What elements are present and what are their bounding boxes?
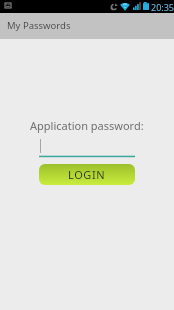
staticText: LOGIN [68, 167, 106, 182]
button[interactable]: Application password input [39, 137, 135, 157]
staticText: 20:35 [151, 1, 174, 13]
button[interactable]: LOGIN [39, 164, 135, 185]
staticText: My Passwords [7, 19, 71, 32]
staticText: Application password: [30, 118, 144, 133]
